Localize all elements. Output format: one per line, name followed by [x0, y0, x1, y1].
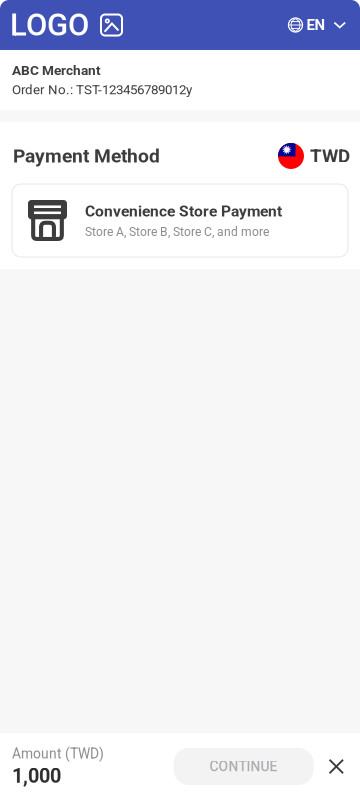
staticText: ABC Merchant — [12, 63, 101, 78]
staticText: LOGO — [10, 7, 89, 43]
staticText: Payment Method — [13, 145, 160, 167]
staticText: Convenience Store Payment — [85, 202, 282, 220]
staticText: Store A, Store B, Store C, and more — [85, 225, 269, 239]
button[interactable]: Close — [314, 747, 360, 786]
button[interactable]: EN — [288, 10, 346, 40]
button[interactable]: Convenience Store Payment — [12, 184, 348, 257]
staticText: Order No.: TST-123456789012y — [12, 82, 192, 97]
button[interactable]: CONTINUE — [174, 748, 314, 785]
staticText: TWD — [310, 145, 350, 167]
staticText: CONTINUE — [210, 759, 278, 774]
staticText: EN — [306, 16, 325, 34]
staticText: Amount (TWD) — [12, 746, 104, 762]
staticText: 1,000 — [12, 765, 61, 787]
